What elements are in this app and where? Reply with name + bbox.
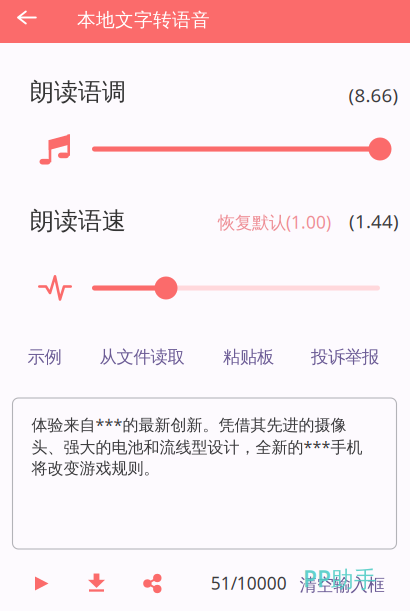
button[interactable]: 示例 <box>27 346 61 368</box>
button[interactable]: Share <box>135 566 169 600</box>
staticText: 从文件读取 <box>99 346 184 368</box>
button[interactable]: 恢复默认(1.00) <box>218 210 331 233</box>
staticText: 示例 <box>27 346 61 368</box>
staticText: 朗读语速 <box>30 206 126 236</box>
button[interactable]: Play <box>24 566 58 600</box>
staticText: 51/10000 <box>211 571 287 594</box>
staticText: 恢复默认(1.00) <box>218 210 331 233</box>
button[interactable]: Back <box>4 0 50 39</box>
button[interactable]: 投诉举报 <box>311 346 379 368</box>
staticText: (1.44) <box>349 209 399 233</box>
staticText: 本地文字转语音 <box>77 8 210 31</box>
staticText: 朗读语调 <box>30 77 126 107</box>
staticText: 体验来自***的最新创新。凭借其先进的摄像头、强大的电池和流线型设计，全新的**… <box>31 414 362 478</box>
button[interactable]: 粘贴板 <box>223 346 274 368</box>
staticText: 投诉举报 <box>311 346 379 368</box>
button[interactable]: 从文件读取 <box>99 346 184 368</box>
staticText: 粘贴板 <box>223 346 274 368</box>
button[interactable]: Download <box>79 566 113 600</box>
staticText: PP助手 <box>303 563 377 594</box>
staticText: 清空输入框 <box>299 574 384 596</box>
staticText: (8.66) <box>348 83 398 107</box>
button[interactable]: 清空输入框 <box>299 574 384 596</box>
